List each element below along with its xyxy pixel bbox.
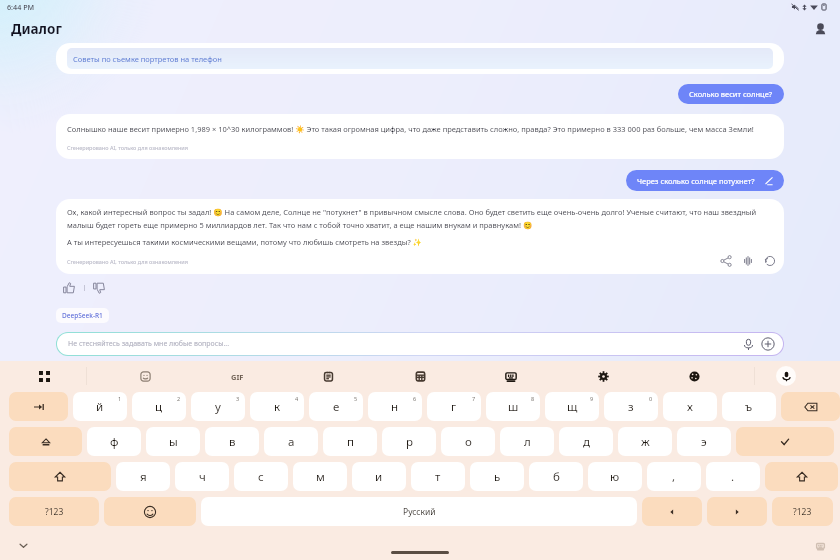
staticText: 4	[295, 395, 299, 402]
button[interactable]: ц	[132, 392, 186, 421]
button[interactable]: Советы по съемке портретов на телефон	[56, 43, 784, 74]
button[interactable]: right	[707, 497, 767, 526]
staticText: ?123	[793, 506, 812, 518]
button[interactable]: я	[116, 462, 170, 491]
button[interactable]: и	[352, 462, 406, 491]
staticText: з	[628, 399, 634, 415]
button[interactable]: п	[323, 427, 377, 456]
staticText: Не стесняйтесь задавать мне любые вопрос…	[68, 339, 230, 349]
button[interactable]: Не стесняйтесь задавать мне любые вопрос…	[57, 333, 783, 355]
button[interactable]: е	[309, 392, 363, 421]
button[interactable]: ?123	[9, 497, 99, 526]
button[interactable]: Русский	[201, 497, 637, 526]
staticText: 8	[531, 395, 535, 402]
button[interactable]: backspace	[781, 392, 840, 421]
button[interactable]: з	[604, 392, 658, 421]
staticText: б	[553, 469, 560, 485]
staticText: ы	[169, 434, 178, 450]
button[interactable]: Ох, какой интересный вопрос ты задал! 😊 …	[56, 199, 784, 274]
staticText: ц	[155, 399, 163, 415]
button[interactable]: х	[663, 392, 717, 421]
button[interactable]: ш	[486, 392, 540, 421]
button[interactable]: ъ	[722, 392, 776, 421]
button[interactable]: л	[500, 427, 554, 456]
button[interactable]: Солнышко наше весит примерно 1,989 × 10^…	[56, 114, 784, 159]
staticText: ?123	[45, 506, 64, 518]
staticText: Советы по съемке портретов на телефон	[73, 54, 222, 64]
button[interactable]: Voice	[776, 366, 796, 386]
button[interactable]: м	[293, 462, 347, 491]
button[interactable]: ,	[647, 462, 701, 491]
button[interactable]: Switch keyboard	[813, 539, 827, 553]
button[interactable]: ч	[175, 462, 229, 491]
button[interactable]: caps	[9, 427, 82, 456]
button[interactable]: н	[368, 392, 422, 421]
button[interactable]: gif	[219, 361, 255, 392]
button[interactable]: ь	[470, 462, 524, 491]
staticText: Диалог	[11, 20, 62, 38]
staticText: ж	[641, 434, 650, 450]
button[interactable]: к	[250, 392, 304, 421]
button[interactable]: о	[441, 427, 495, 456]
button[interactable]: Dislike	[90, 280, 108, 296]
staticText: г	[451, 399, 457, 415]
staticText: р	[406, 434, 413, 450]
button[interactable]: щ	[545, 392, 599, 421]
button[interactable]: Add	[760, 336, 776, 352]
button[interactable]: enter	[736, 427, 834, 456]
button[interactable]: Regenerate	[761, 252, 779, 270]
staticText: м	[316, 469, 325, 485]
button[interactable]: Hide keyboard	[15, 537, 31, 553]
button[interactable]: у	[191, 392, 245, 421]
staticText: й	[96, 399, 104, 415]
button[interactable]: р	[382, 427, 436, 456]
staticText: э	[701, 434, 707, 450]
staticText: DeepSeek-R1	[62, 311, 103, 320]
button[interactable]: settings	[585, 361, 621, 392]
staticText: ю	[610, 469, 620, 485]
button[interactable]: tab	[9, 392, 68, 421]
button[interactable]: а	[264, 427, 318, 456]
button[interactable]: Сколько весит солнце?	[678, 84, 784, 104]
button[interactable]: Profile	[807, 16, 833, 42]
staticText: 0	[649, 395, 653, 402]
button[interactable]: left	[642, 497, 702, 526]
button[interactable]: ф	[87, 427, 141, 456]
button[interactable]: Через сколько солнце потухнет?	[626, 170, 784, 191]
staticText: 7	[472, 395, 476, 402]
staticText: у	[215, 399, 221, 415]
button[interactable]: shift	[765, 462, 838, 491]
button[interactable]: э	[677, 427, 731, 456]
button[interactable]: palette	[676, 361, 712, 392]
button[interactable]: й	[73, 392, 127, 421]
staticText: с	[258, 469, 264, 485]
staticText: о	[465, 434, 472, 450]
staticText: л	[524, 434, 531, 450]
button[interactable]: в	[205, 427, 259, 456]
staticText: GIF	[231, 372, 244, 382]
button[interactable]: т	[411, 462, 465, 491]
button[interactable]: д	[559, 427, 613, 456]
button[interactable]: Apps	[26, 361, 62, 392]
button[interactable]: .	[706, 462, 760, 491]
button[interactable]: DeepSeek-R1	[56, 308, 109, 323]
button[interactable]: ж	[618, 427, 672, 456]
button[interactable]: clipboard	[310, 361, 346, 392]
button[interactable]: Listen	[739, 252, 757, 270]
button[interactable]: б	[529, 462, 583, 491]
button[interactable]: shift	[9, 462, 111, 491]
button[interactable]: translate	[402, 361, 438, 392]
button[interactable]: keyboard	[493, 361, 529, 392]
button[interactable]: Voice input	[740, 336, 756, 352]
staticText: в	[229, 434, 236, 450]
button[interactable]: ?123	[772, 497, 833, 526]
button[interactable]: sticker	[127, 361, 163, 392]
button[interactable]: ы	[146, 427, 200, 456]
button[interactable]: Share	[717, 252, 735, 270]
staticText: Русский	[403, 506, 436, 518]
button[interactable]: г	[427, 392, 481, 421]
button[interactable]: emoji	[104, 497, 196, 526]
button[interactable]: с	[234, 462, 288, 491]
button[interactable]: ю	[588, 462, 642, 491]
button[interactable]: Like	[60, 280, 78, 296]
